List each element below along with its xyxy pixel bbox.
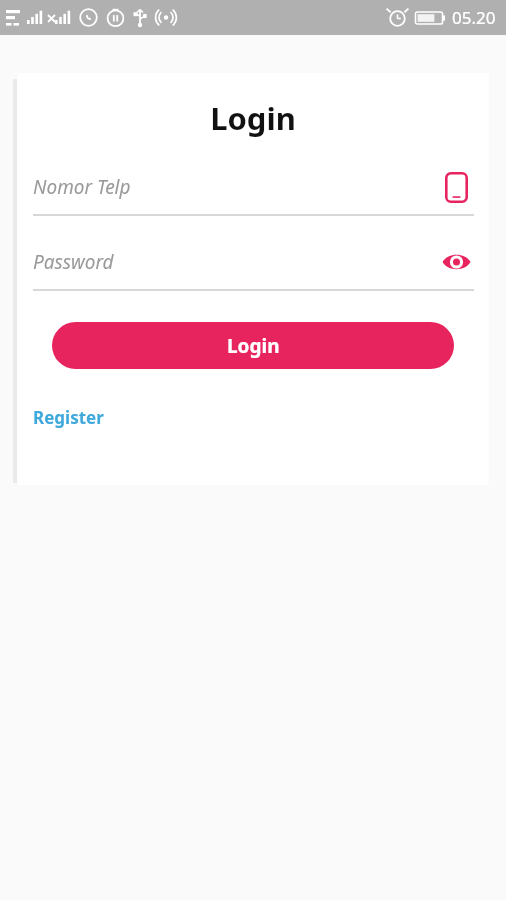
staticText: Password [33, 249, 114, 275]
button[interactable]: Password [33, 244, 474, 280]
staticText: Login [227, 333, 280, 359]
staticText: 05.20 [452, 6, 496, 29]
staticText: Login [210, 97, 296, 139]
staticText: Register [33, 406, 104, 429]
button[interactable]: Login [52, 322, 454, 369]
button[interactable]: Nomor Telp [33, 169, 474, 205]
button[interactable]: Register [33, 402, 104, 433]
button[interactable]: Phone number [438, 169, 474, 205]
button[interactable]: Show password [438, 244, 474, 280]
staticText: Nomor Telp [33, 174, 131, 200]
